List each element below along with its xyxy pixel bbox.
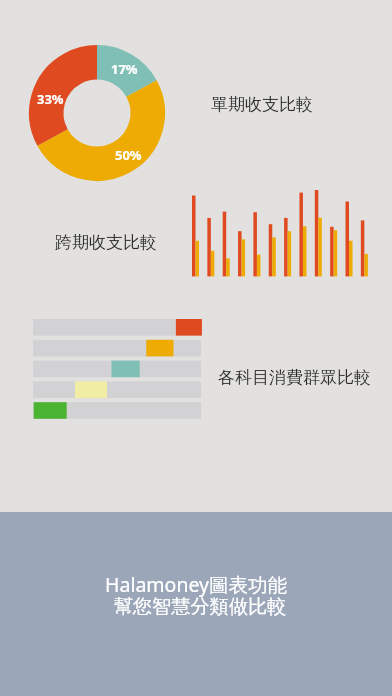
button[interactable]: 各科目消費群眾比較 xyxy=(218,367,371,388)
button[interactable]: Category spending comparison chart xyxy=(33,319,201,419)
staticText: 50% xyxy=(115,146,142,164)
staticText: 單期收支比較 xyxy=(211,94,313,115)
staticText: Halamoney圖表功能 xyxy=(0,571,392,598)
staticText: 33% xyxy=(37,90,64,108)
staticText: 跨期收支比較 xyxy=(55,232,157,253)
staticText: 17% xyxy=(111,60,138,78)
staticText: 各科目消費群眾比較 xyxy=(218,367,371,388)
button[interactable]: Halamoney圖表功能 xyxy=(0,512,392,696)
button[interactable]: Cross period income and expense bar char… xyxy=(192,189,370,277)
staticText: 幫您智慧分類做比較 xyxy=(4,595,392,619)
button[interactable]: 跨期收支比較 xyxy=(55,232,157,253)
button[interactable]: Single period income and expense pie cha… xyxy=(29,45,165,181)
button[interactable]: 單期收支比較 xyxy=(211,94,313,115)
